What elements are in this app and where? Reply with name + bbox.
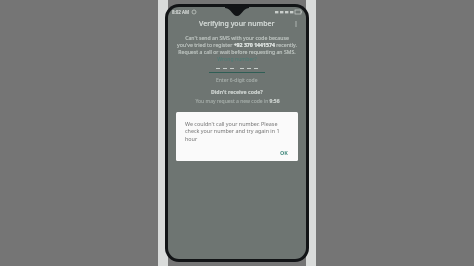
- staticText: Can't send an SMS with your code because…: [177, 34, 297, 62]
- button[interactable]: OK: [277, 148, 291, 157]
- staticText: Enter 6-digit code: [216, 77, 258, 84]
- staticText: You may request a new code in 9:56: [195, 98, 280, 105]
- staticText: Verifying your number: [199, 19, 275, 29]
- button[interactable]: Didn't receive code?: [211, 88, 263, 95]
- staticText: We couldn't call your number. Please che…: [185, 120, 291, 143]
- button[interactable]: More options: [290, 18, 302, 30]
- staticText: OK: [280, 149, 288, 156]
- staticText: 8:02 AM: [172, 9, 190, 15]
- staticText: Didn't receive code?: [211, 88, 263, 95]
